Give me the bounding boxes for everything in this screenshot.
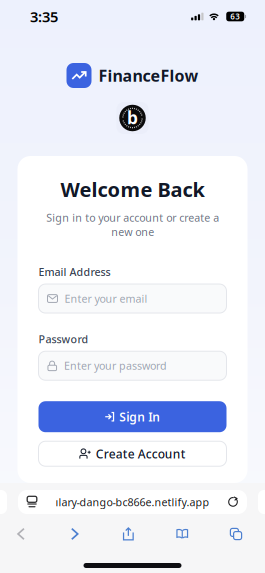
button[interactable]: Bookmarks: [162, 519, 202, 549]
staticText: ılary-dango-bc866e.netlify.app: [55, 495, 209, 509]
staticText: Welcome Back: [60, 176, 204, 203]
staticText: Sign in to your account or create a new …: [46, 211, 219, 239]
staticText: Email Address: [38, 265, 110, 279]
staticText: b: [127, 106, 138, 129]
button[interactable]: Share: [108, 519, 148, 549]
button[interactable]: ılary-dango-bc866e.netlify.app: [18, 490, 247, 514]
button[interactable]: Forward: [55, 519, 95, 549]
staticText: 63: [230, 11, 240, 22]
staticText: Sign In: [119, 409, 160, 425]
button[interactable]: Sign In: [38, 401, 226, 432]
button[interactable]: Back: [1, 519, 41, 549]
button[interactable]: Create Account: [38, 441, 226, 466]
staticText: 3:35: [30, 7, 58, 26]
button[interactable]: Tabs: [216, 519, 256, 549]
staticText: FinanceFlow: [98, 65, 198, 86]
staticText: Password: [38, 332, 88, 346]
staticText: Enter your email: [64, 291, 147, 306]
staticText: Enter your password: [64, 359, 167, 373]
staticText: Create Account: [96, 446, 186, 462]
